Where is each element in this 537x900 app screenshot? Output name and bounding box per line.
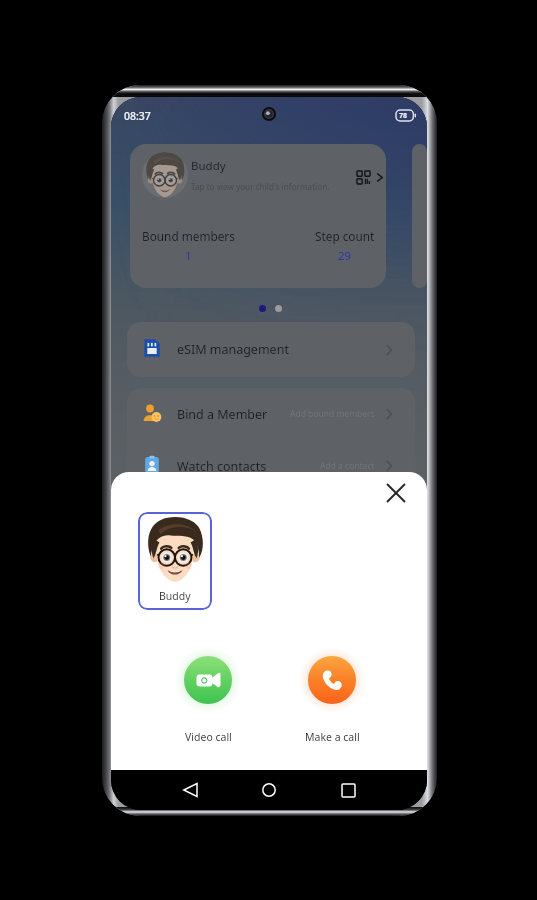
staticText: Watch contacts	[177, 458, 320, 475]
button[interactable]: Buddy	[138, 512, 212, 610]
staticText: eSIM management	[177, 341, 384, 358]
button[interactable]: Buddy	[130, 144, 386, 288]
button[interactable]: Make a call	[285, 647, 379, 744]
staticText: Buddy	[191, 158, 226, 174]
staticText: 29	[338, 248, 352, 264]
staticText: 08:37	[124, 109, 151, 123]
button[interactable]: eSIM management	[127, 322, 415, 377]
staticText: Bound members	[142, 228, 235, 244]
staticText: Video call	[185, 730, 232, 744]
button[interactable]: Back	[175, 775, 205, 805]
staticText: Tap to view your child's information.	[191, 181, 330, 192]
button[interactable]: Video call	[161, 647, 255, 744]
staticText: Add a contact	[320, 460, 375, 472]
button[interactable]: Home	[254, 775, 284, 805]
staticText: Step count	[315, 228, 375, 244]
staticText: Buddy	[159, 589, 191, 603]
button[interactable]: Recents	[333, 775, 363, 805]
staticText: 1	[185, 248, 192, 264]
staticText: Add bound members	[290, 408, 375, 420]
staticText: Make a call	[305, 730, 360, 744]
staticText: 78	[399, 111, 408, 121]
button[interactable]: Bind a Member	[127, 388, 415, 440]
button[interactable]: Close	[381, 478, 411, 508]
staticText: Bind a Member	[177, 406, 290, 423]
button[interactable]: Watch contacts	[127, 440, 415, 492]
